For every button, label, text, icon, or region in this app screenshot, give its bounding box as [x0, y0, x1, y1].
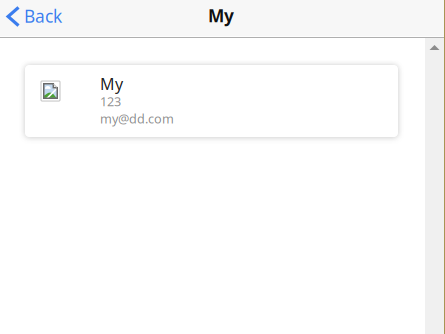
staticText: 123: [100, 93, 121, 110]
staticText: My: [208, 4, 234, 27]
button[interactable]: My: [25, 65, 398, 137]
staticText: my@dd.com: [100, 110, 174, 127]
staticText: My: [100, 73, 123, 95]
button[interactable]: Back: [0, 0, 70, 36]
staticText: Back: [24, 4, 62, 28]
